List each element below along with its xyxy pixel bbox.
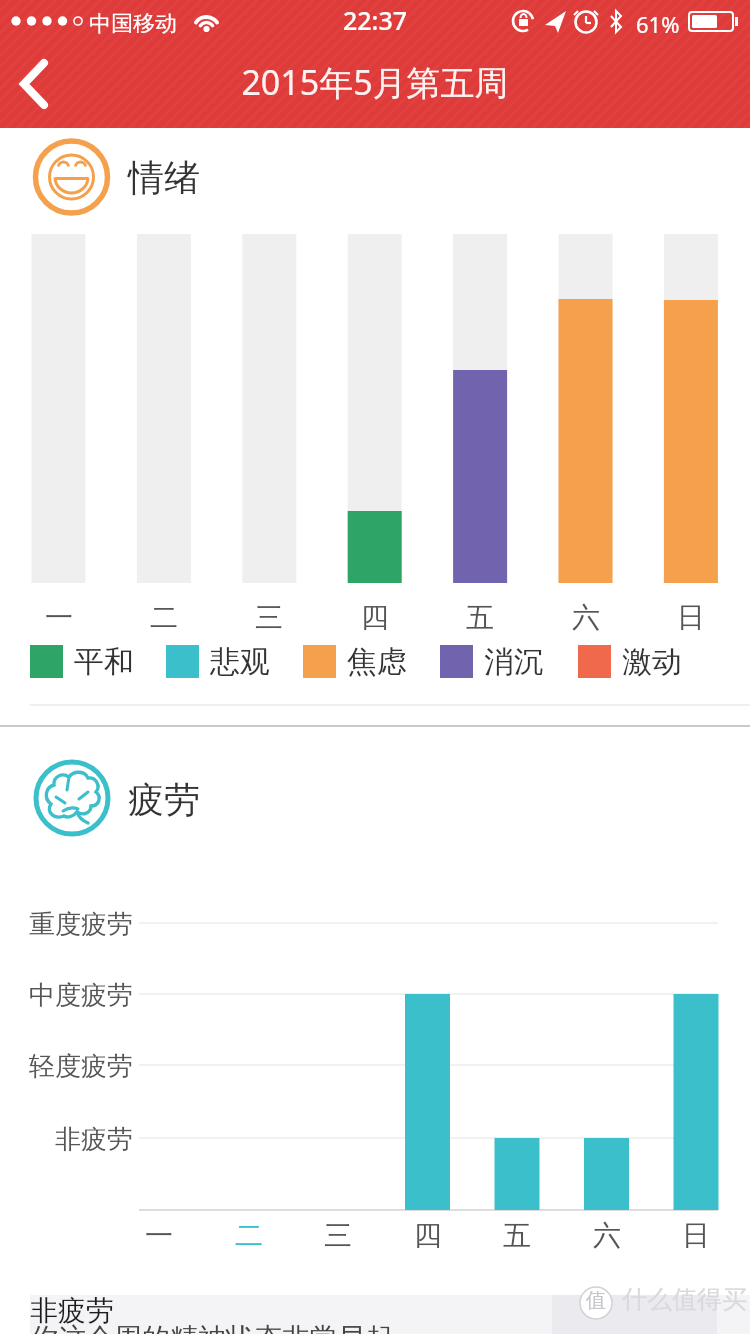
staticText: 值: [586, 1288, 606, 1313]
staticText: 情绪: [128, 155, 200, 200]
staticText: 二: [219, 1218, 279, 1253]
staticText: 日: [666, 1218, 726, 1253]
staticText: 2015年5月第五周: [0, 59, 750, 105]
staticText: 中国移动: [89, 10, 177, 38]
staticText: 一: [129, 1218, 189, 1253]
staticText: 61%: [636, 9, 680, 39]
button[interactable]: 二: [219, 1218, 279, 1254]
staticText: 你这个周的精神状态非常早起: [30, 1321, 394, 1334]
button[interactable]: 日: [666, 1218, 726, 1254]
button[interactable]: 五: [487, 1218, 547, 1254]
staticText: 三: [239, 600, 299, 635]
staticText: 五: [450, 600, 510, 635]
button[interactable]: 四: [398, 1218, 458, 1254]
staticText: 疲劳: [128, 777, 200, 822]
staticText: 22:37: [0, 3, 750, 37]
staticText: 一: [29, 600, 89, 635]
button[interactable]: [0, 44, 80, 128]
staticText: 三: [308, 1218, 368, 1253]
staticText: 轻度疲劳: [29, 1050, 133, 1083]
staticText: 非疲劳: [30, 1293, 114, 1328]
staticText: 什么值得买: [622, 1284, 747, 1315]
staticText: 消沉: [484, 643, 544, 681]
staticText: 焦虑: [347, 643, 407, 681]
button[interactable]: 一: [129, 1218, 189, 1254]
staticText: 非疲劳: [29, 1123, 133, 1156]
staticText: 重度疲劳: [29, 908, 133, 941]
staticText: 四: [345, 600, 405, 635]
staticText: 六: [577, 1218, 637, 1253]
staticText: 悲观: [210, 643, 270, 681]
staticText: 激动: [622, 643, 682, 681]
button[interactable]: 六: [577, 1218, 637, 1254]
staticText: 六: [556, 600, 616, 635]
button[interactable]: 三: [308, 1218, 368, 1254]
staticText: 五: [487, 1218, 547, 1253]
staticText: 四: [398, 1218, 458, 1253]
staticText: 二: [134, 600, 194, 635]
staticText: 日: [661, 600, 721, 635]
staticText: 平和: [74, 643, 134, 681]
staticText: 中度疲劳: [29, 979, 133, 1012]
